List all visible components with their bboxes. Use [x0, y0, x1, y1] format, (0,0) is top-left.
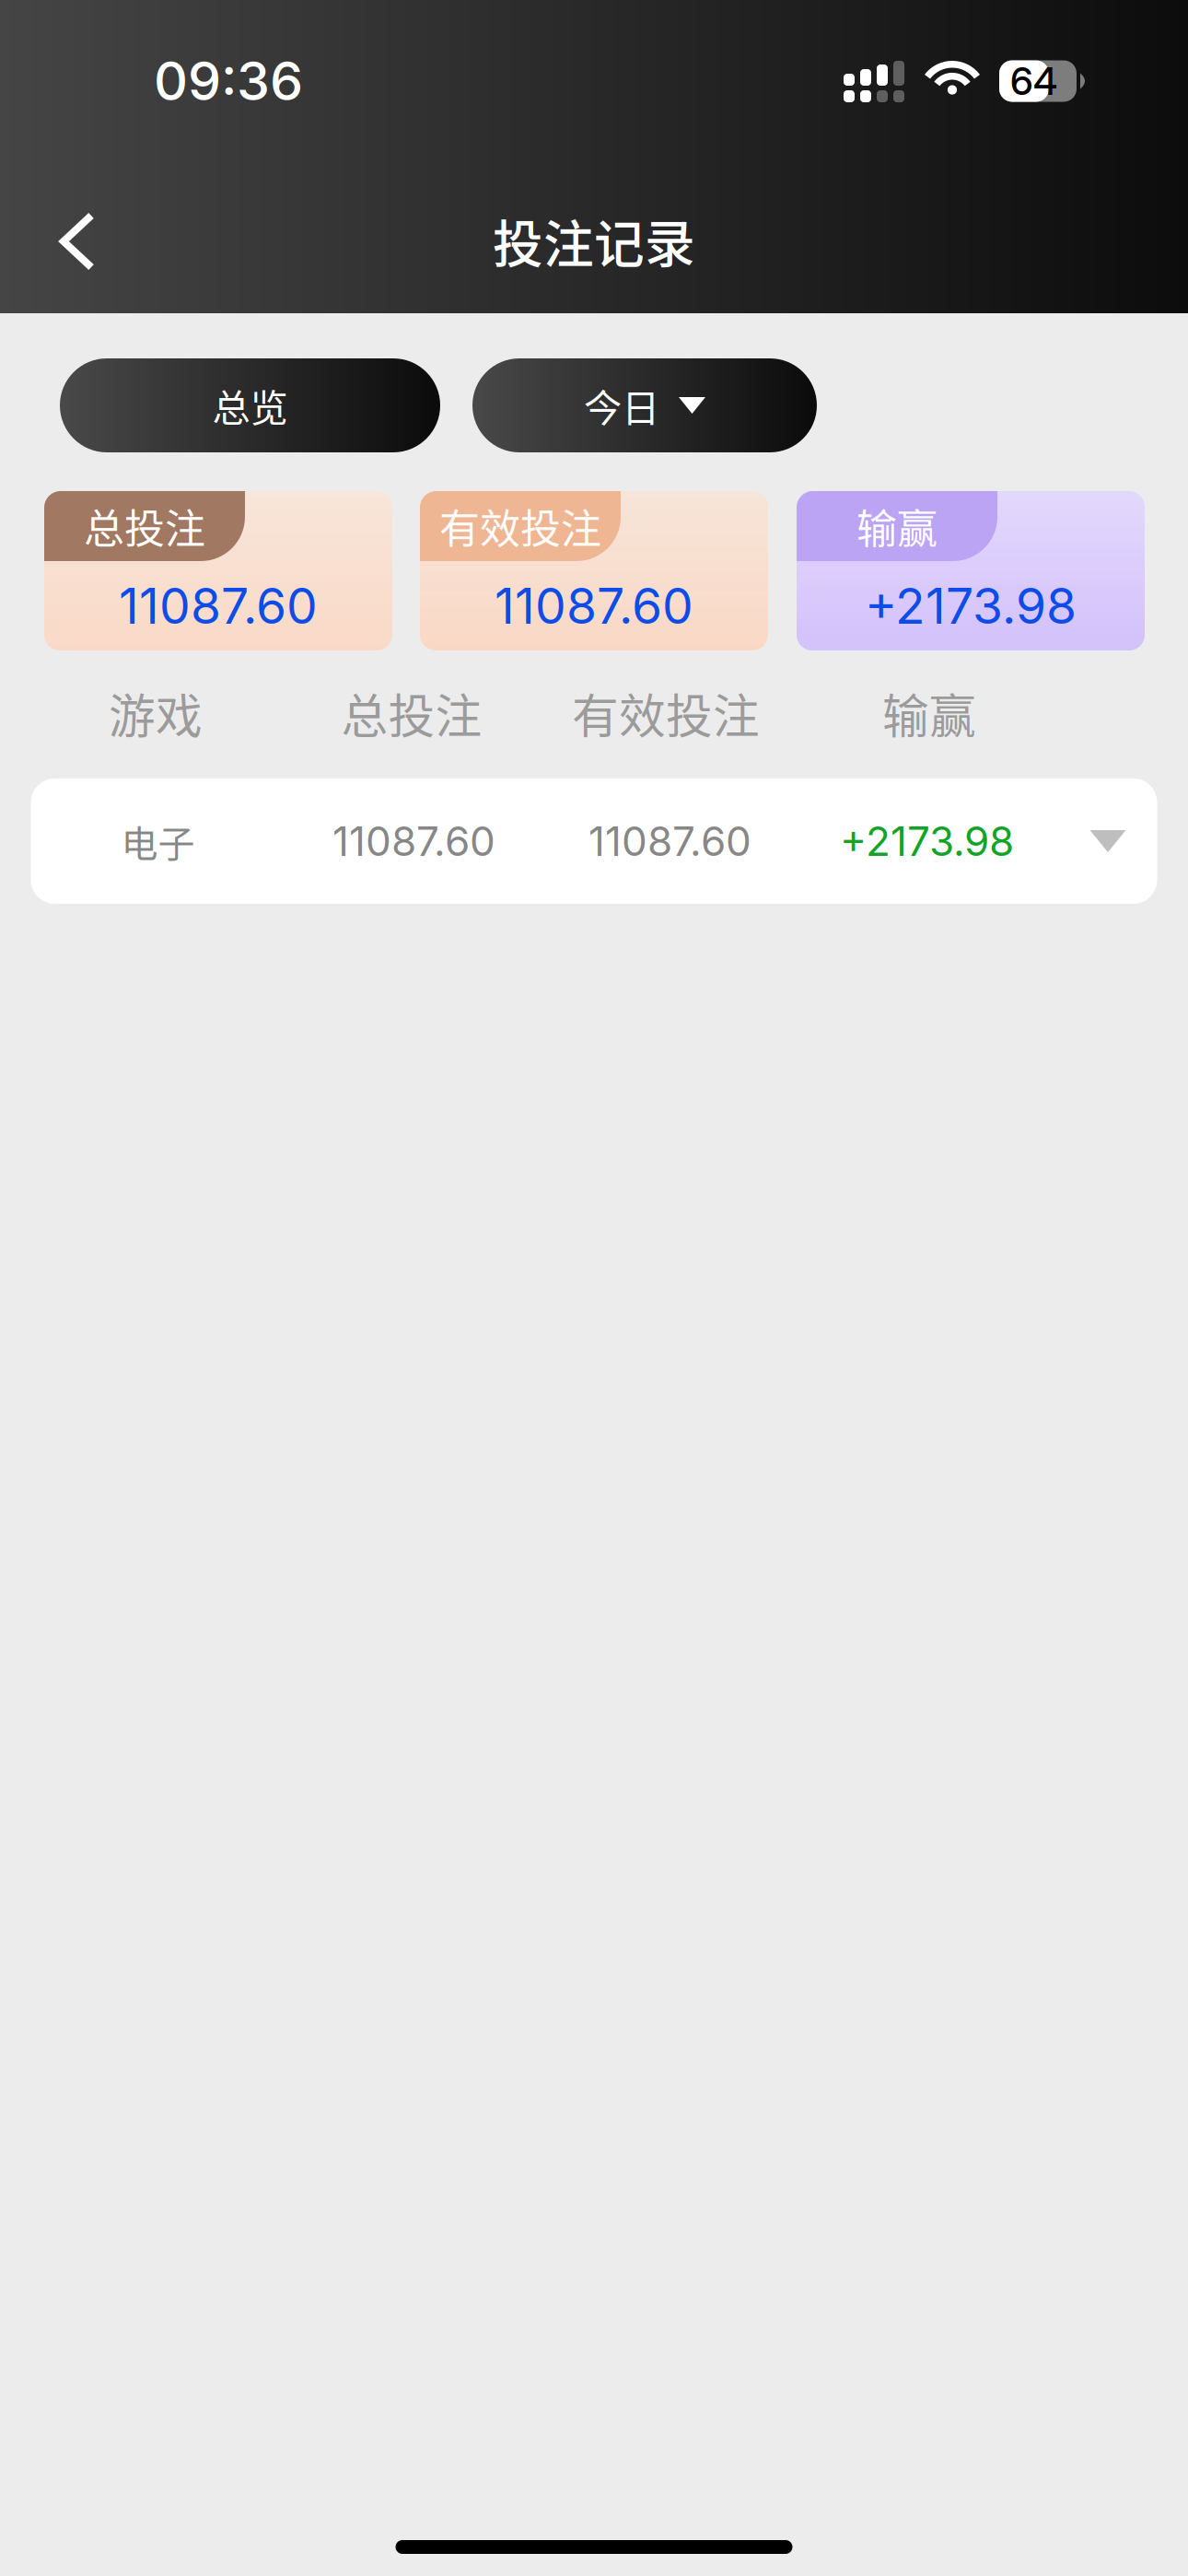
staticText: 输赢: [856, 497, 938, 555]
staticText: +2173.98: [865, 576, 1077, 635]
button[interactable]: 电子: [31, 779, 1157, 904]
staticText: 11087.60: [588, 817, 751, 866]
staticText: 游戏: [109, 679, 203, 747]
staticText: 总投注: [341, 679, 482, 747]
staticText: 今日: [584, 378, 659, 433]
staticText: 总览: [212, 378, 288, 433]
staticText: 11087.60: [332, 817, 495, 866]
staticText: 有效投注: [439, 497, 601, 555]
staticText: 输赢: [882, 679, 976, 747]
button[interactable]: Back: [0, 0, 143, 288]
staticText: 有效投注: [572, 679, 760, 747]
staticText: 电子: [121, 814, 195, 868]
staticText: +2173.98: [840, 817, 1014, 866]
staticText: 投注记录: [493, 204, 695, 277]
staticText: 09:36: [154, 49, 303, 113]
button[interactable]: 今日: [472, 358, 817, 452]
staticText: 64: [1010, 58, 1057, 104]
staticText: 11087.60: [495, 576, 693, 635]
button[interactable]: 总览: [60, 358, 440, 452]
staticText: 总投注: [84, 497, 205, 555]
staticText: 11087.60: [119, 576, 318, 635]
